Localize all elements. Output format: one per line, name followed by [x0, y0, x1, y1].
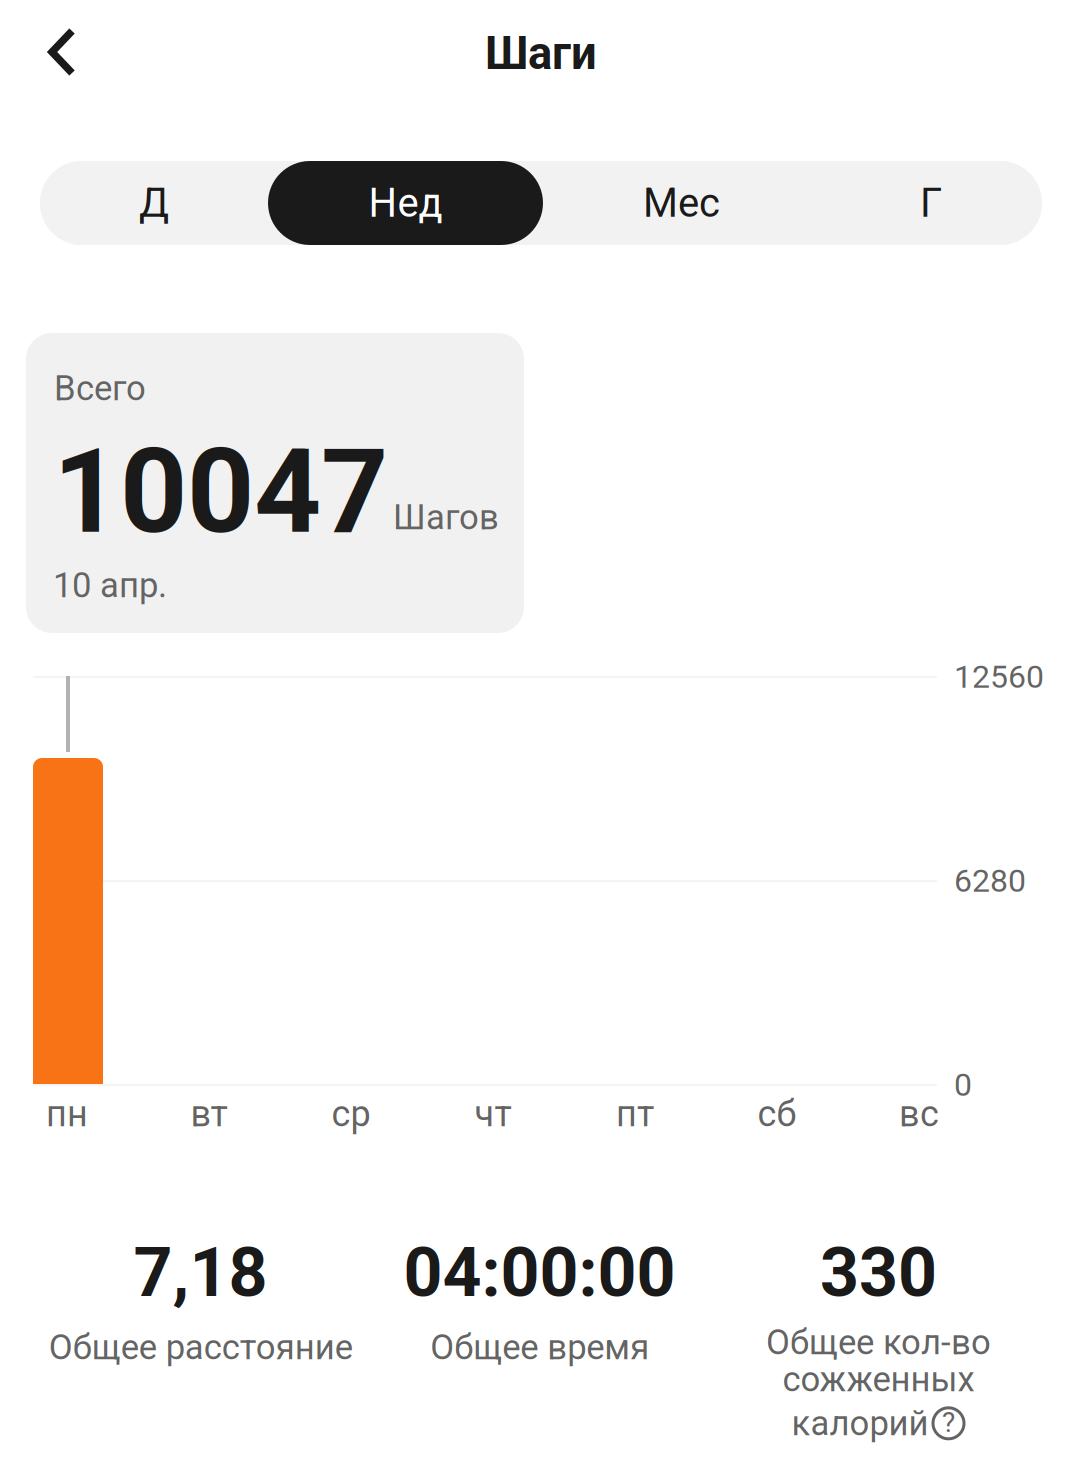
staticText: вс [899, 1093, 939, 1135]
staticText: Общее расстояние [48, 1327, 352, 1368]
staticText: пт [616, 1093, 654, 1135]
staticText: 10047 [53, 423, 388, 560]
button[interactable]: Г [820, 161, 1042, 245]
staticText: 7,18 [133, 1233, 267, 1313]
staticText: 04:00:00 [403, 1233, 675, 1313]
staticText: ? [942, 1406, 955, 1439]
staticText: 330 [820, 1233, 937, 1313]
staticText: Общее время [430, 1327, 649, 1368]
staticText: калорий [791, 1403, 928, 1444]
staticText: 6280 [954, 862, 1026, 899]
staticText: Д [139, 180, 169, 226]
button[interactable]: Back [14, 4, 110, 100]
button[interactable]: Д [40, 161, 268, 245]
staticText: Г [920, 180, 942, 226]
staticText: Всего [54, 368, 146, 409]
staticText: Шаги [485, 27, 597, 80]
staticText: вт [190, 1093, 227, 1135]
staticText: 10 апр. [53, 565, 167, 606]
staticText: Общее кол-во [766, 1322, 991, 1363]
staticText: пн [46, 1093, 88, 1135]
button[interactable]: Мес [543, 161, 820, 245]
staticText: ср [331, 1093, 370, 1135]
staticText: Шагов [393, 497, 499, 538]
staticText: 12560 [954, 658, 1044, 695]
staticText: 0 [954, 1066, 972, 1103]
staticText: сожженных [782, 1359, 974, 1400]
staticText: Нед [368, 180, 442, 226]
staticText: Мес [643, 180, 720, 226]
staticText: чт [474, 1093, 511, 1135]
button[interactable]: Нед [268, 161, 543, 245]
staticText: сб [757, 1093, 796, 1135]
button[interactable]: About calories burned [931, 1406, 965, 1440]
